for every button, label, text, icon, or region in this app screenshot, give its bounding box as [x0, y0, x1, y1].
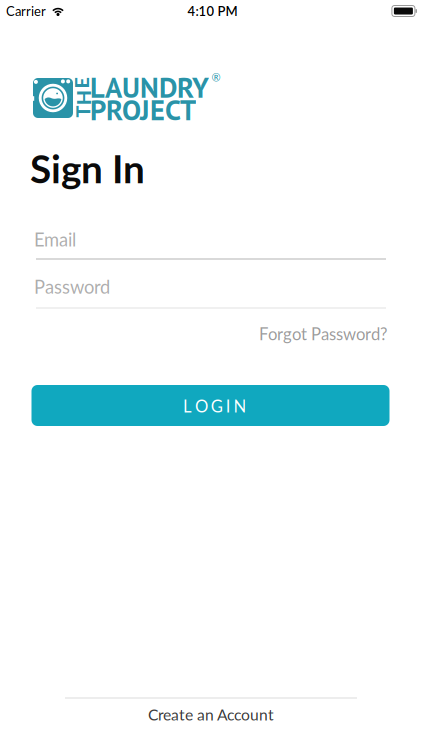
staticText: I	[226, 396, 231, 416]
staticText: LAUNDRY	[90, 69, 209, 106]
staticText: Sign In	[30, 145, 145, 191]
staticText: H	[76, 86, 91, 110]
staticText: Email	[34, 228, 76, 250]
staticText: E	[76, 71, 87, 95]
staticText: Carrier	[6, 3, 46, 19]
staticText: L	[183, 396, 192, 416]
button[interactable]: Email	[34, 228, 384, 256]
button[interactable]: Create an Account	[0, 705, 422, 724]
staticText: Password	[34, 276, 110, 298]
staticText: G	[211, 396, 223, 416]
staticText: PROJECT	[90, 91, 196, 128]
staticText: ®	[211, 71, 220, 84]
button[interactable]: Password	[34, 276, 384, 304]
staticText: T	[77, 100, 89, 123]
staticText: N	[234, 396, 247, 416]
staticText: Create an Account	[148, 705, 274, 724]
staticText: 4:10 PM	[187, 3, 237, 19]
button[interactable]: L	[31, 385, 389, 426]
button[interactable]: Forgot Password?	[259, 324, 387, 344]
staticText: O	[195, 396, 208, 416]
staticText: Forgot Password?	[259, 324, 387, 344]
